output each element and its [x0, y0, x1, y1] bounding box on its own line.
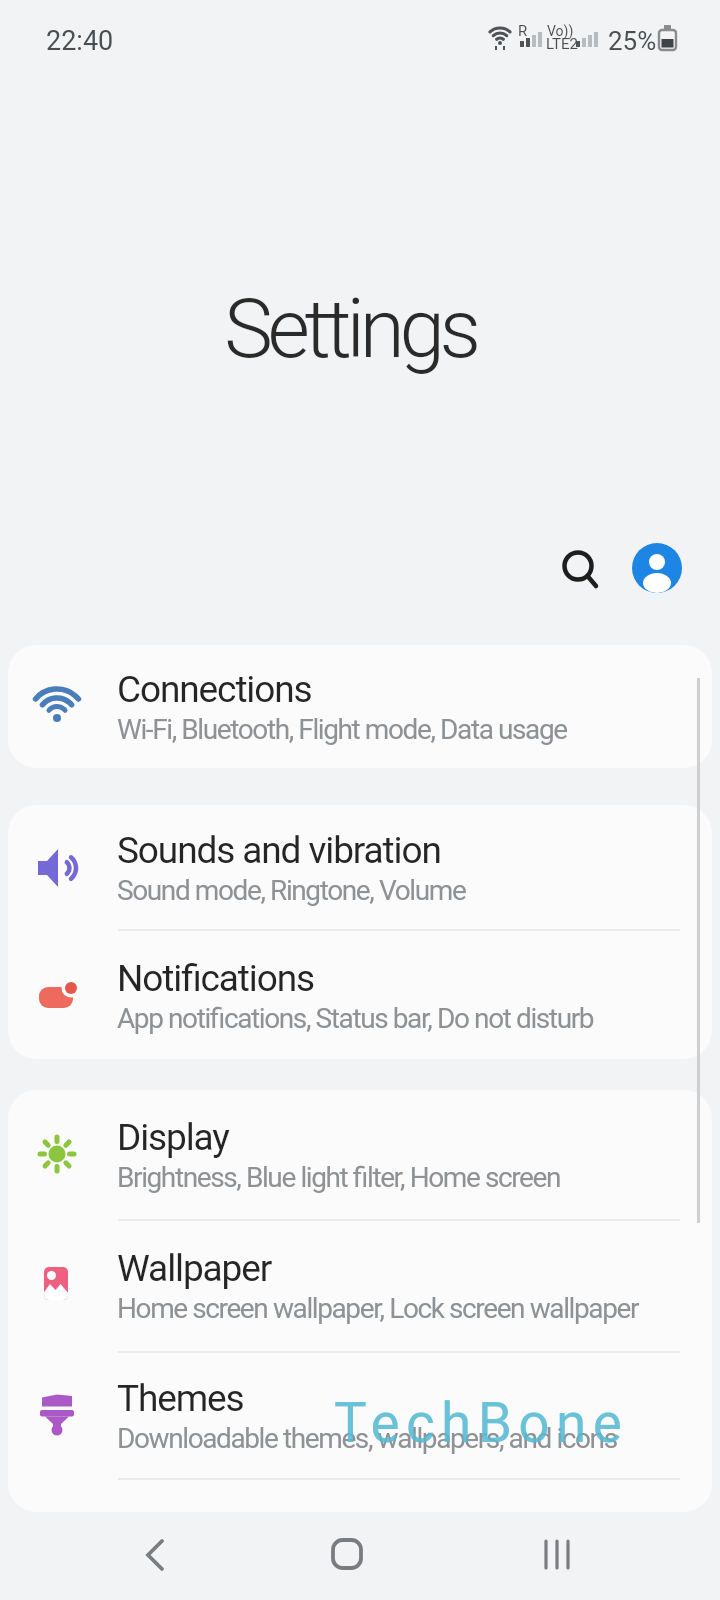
button[interactable] — [556, 545, 600, 589]
staticText: Downloadable themes, wallpapers, and ico… — [117, 1422, 617, 1455]
staticText: Sounds and vibration — [117, 829, 441, 872]
button[interactable]: Notifications — [8, 931, 712, 1059]
staticText: 25% — [608, 26, 657, 56]
staticText: Wallpaper — [117, 1247, 272, 1290]
button[interactable] — [321, 1528, 373, 1580]
staticText: Themes — [117, 1377, 244, 1420]
button[interactable]: Wallpaper — [8, 1221, 712, 1351]
staticText: 22:40 — [46, 25, 114, 57]
staticText: LTE2 — [546, 35, 578, 53]
staticText: App notifications, Status bar, Do not di… — [117, 1002, 594, 1035]
staticText: Home screen wallpaper, Lock screen wallp… — [117, 1292, 638, 1325]
staticText: Brightness, Blue light filter, Home scre… — [117, 1161, 561, 1194]
staticText: Vo)) — [547, 23, 574, 39]
button[interactable]: Display — [8, 1090, 712, 1219]
button[interactable] — [632, 543, 682, 593]
staticText: Notifications — [117, 957, 315, 1000]
button[interactable]: Connections — [8, 645, 712, 768]
staticText: Sound mode, Ringtone, Volume — [117, 874, 466, 907]
button[interactable] — [129, 1529, 181, 1581]
button[interactable]: Themes — [8, 1353, 712, 1478]
staticText: Display — [117, 1116, 229, 1159]
staticText: Wi-Fi, Bluetooth, Flight mode, Data usag… — [117, 713, 567, 746]
staticText: Connections — [117, 668, 312, 711]
button[interactable]: Sounds and vibration — [8, 805, 712, 929]
staticText: TechBone — [334, 1391, 629, 1455]
staticText: R — [518, 22, 528, 40]
button[interactable] — [532, 1528, 584, 1580]
staticText: Settings — [0, 281, 710, 377]
